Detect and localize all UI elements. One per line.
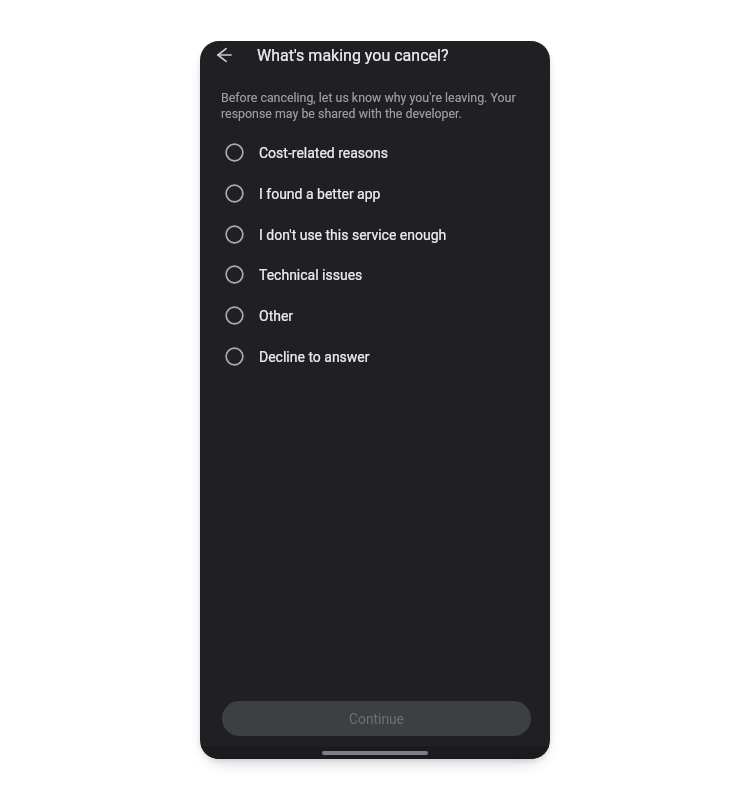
button[interactable]: I don't use this service enough — [200, 214, 550, 255]
button[interactable]: Decline to answer — [200, 336, 550, 377]
staticText: I don't use this service enough — [259, 227, 447, 243]
button[interactable]: Cost-related reasons — [200, 132, 550, 173]
staticText: Technical issues — [259, 267, 363, 283]
button[interactable]: Other — [200, 295, 550, 336]
button[interactable]: I found a better app — [200, 173, 550, 214]
staticText: Before canceling, let us know why you're… — [221, 89, 527, 121]
button[interactable]: Continue — [222, 701, 531, 736]
staticText: I found a better app — [259, 186, 381, 202]
button[interactable]: Technical issues — [200, 254, 550, 295]
staticText: What's making you cancel? — [257, 44, 449, 65]
staticText: Decline to answer — [259, 349, 370, 365]
button[interactable]: Back — [210, 41, 238, 69]
staticText: Continue — [349, 711, 404, 727]
staticText: Cost-related reasons — [259, 145, 389, 161]
staticText: Other — [259, 308, 294, 324]
